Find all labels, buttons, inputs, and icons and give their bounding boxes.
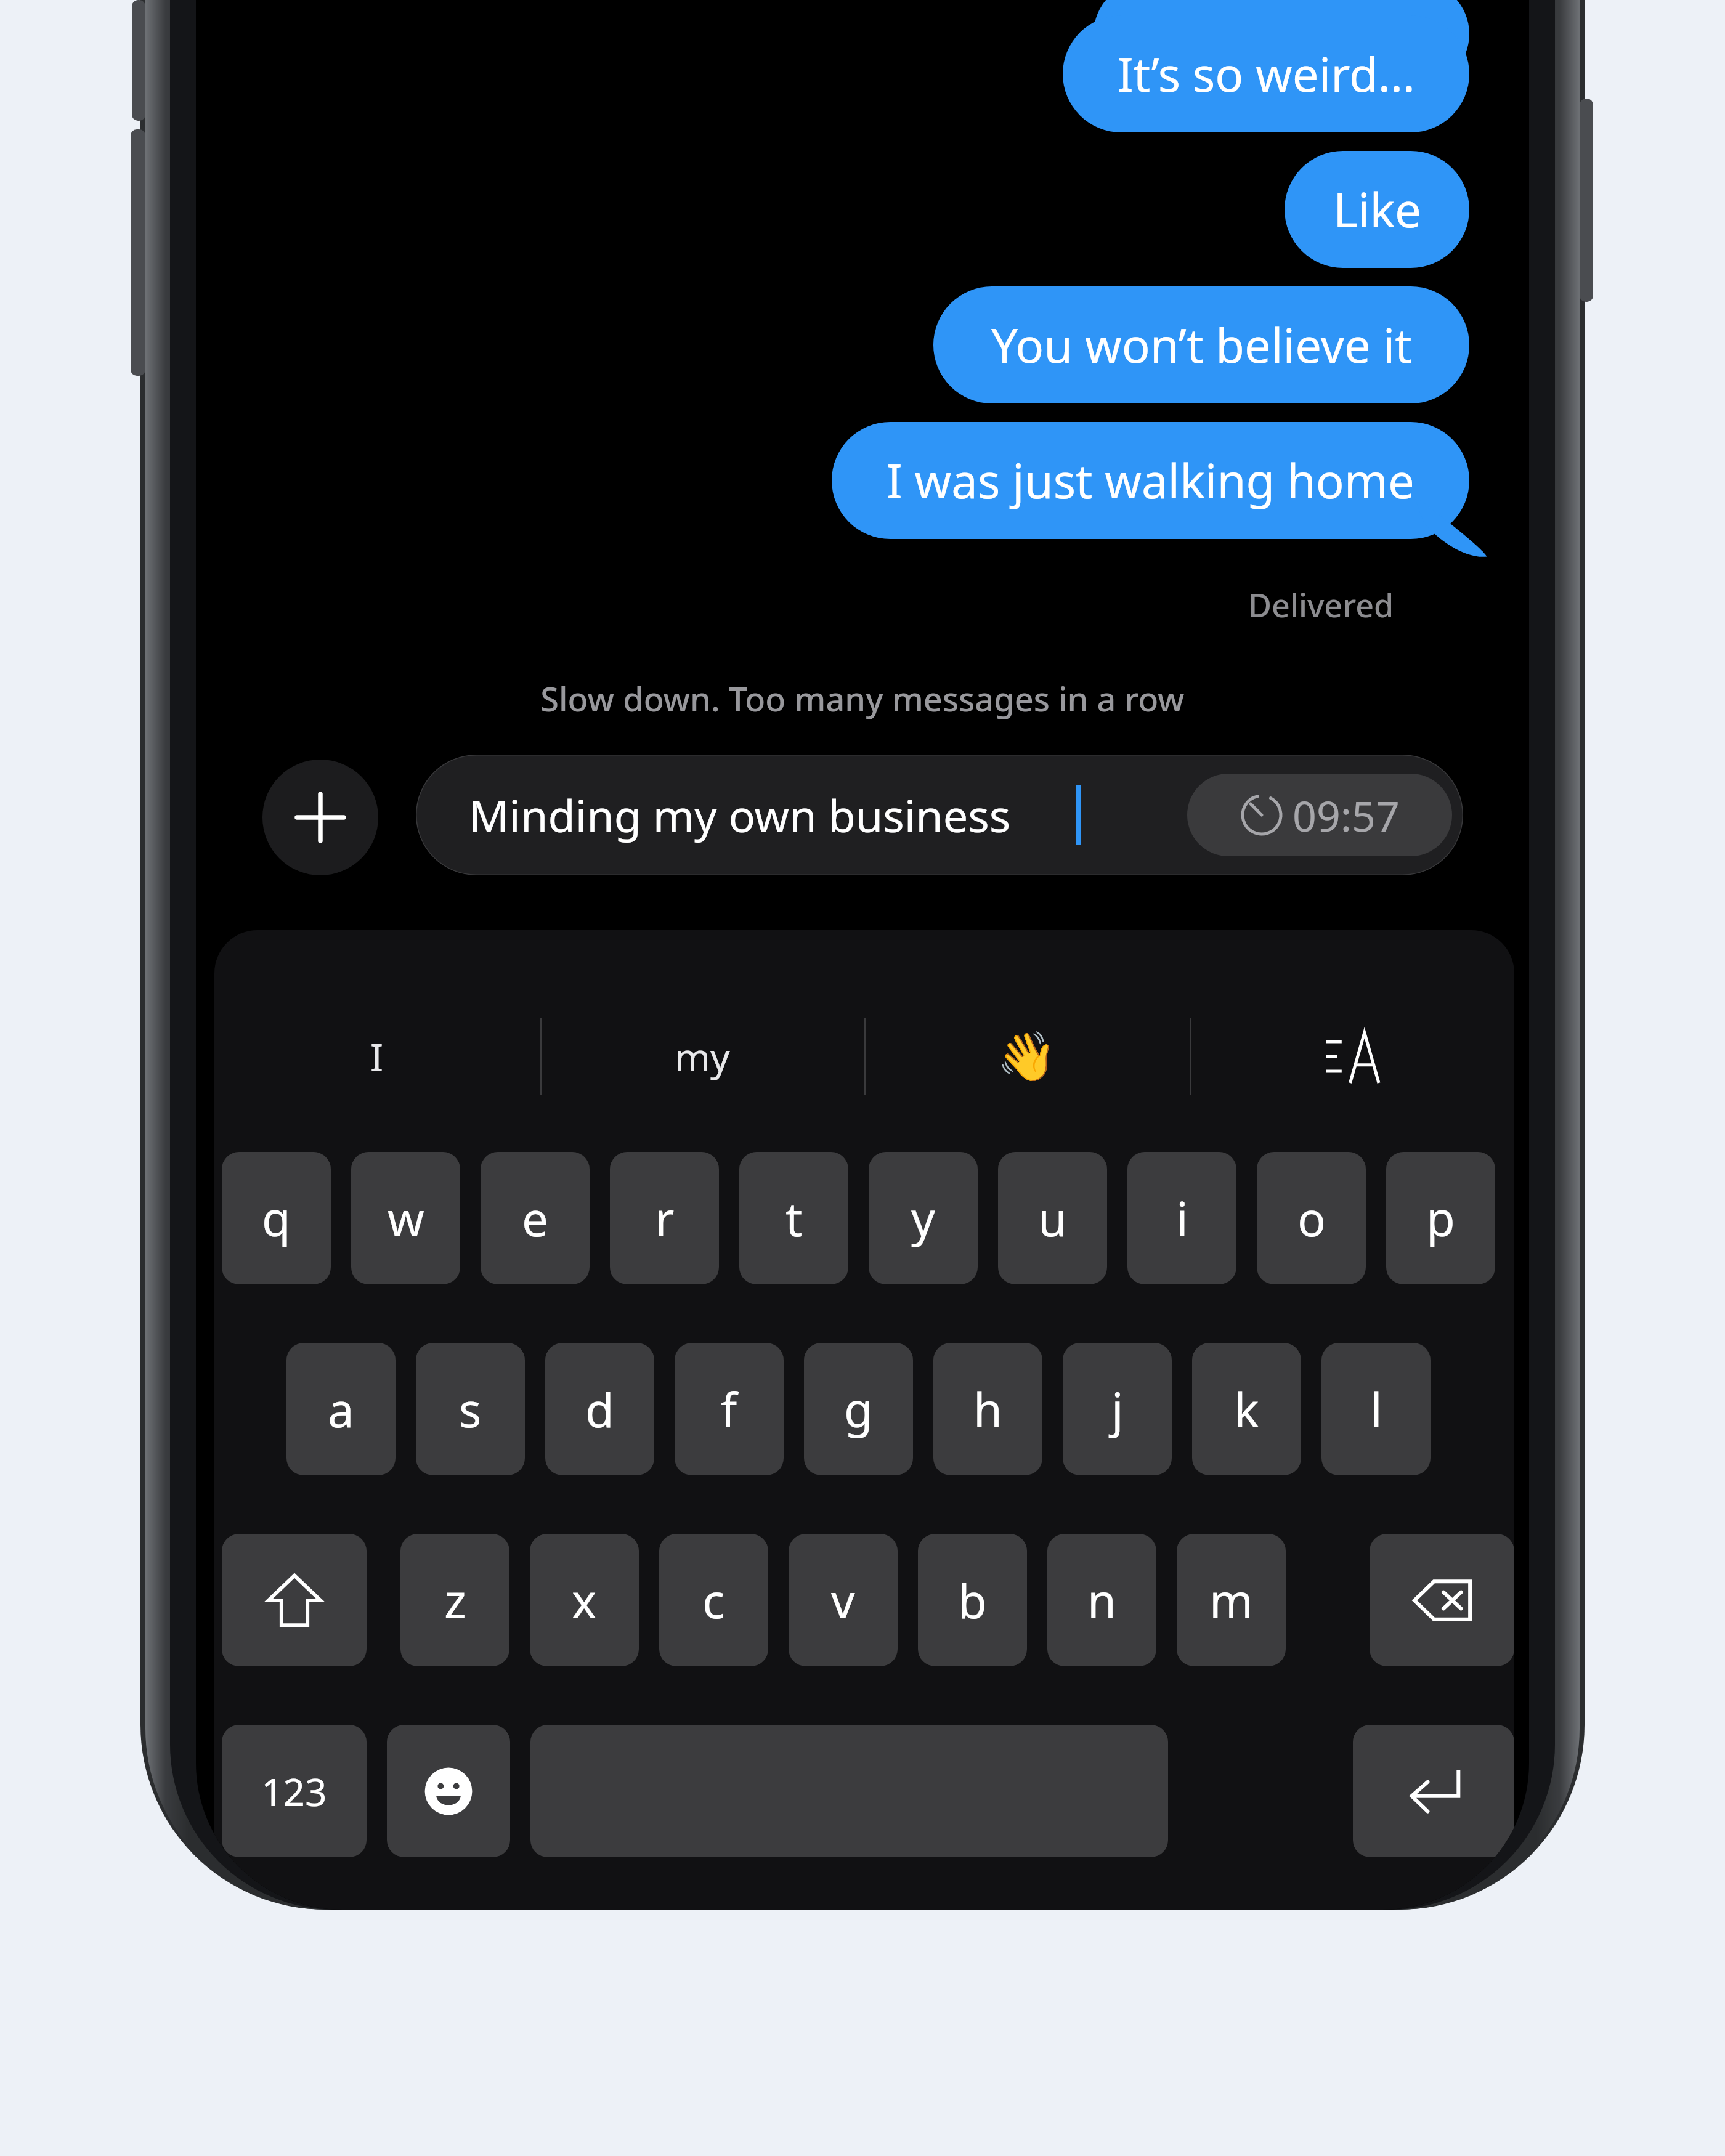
staticText: Like (1333, 177, 1421, 241)
button[interactable]: v (789, 1534, 898, 1666)
staticText: q (262, 1186, 291, 1250)
staticText: k (1234, 1377, 1259, 1441)
staticText: b (958, 1568, 987, 1632)
button[interactable] (1094, 0, 1469, 86)
staticText: n (1087, 1568, 1116, 1632)
button[interactable]: It’s so weird… (1063, 15, 1469, 132)
staticText: w (388, 1186, 424, 1250)
button[interactable]: g (804, 1343, 913, 1475)
button[interactable]: f (675, 1343, 784, 1475)
staticText: Delivered (1248, 583, 1394, 626)
button[interactable]: Add attachment (262, 760, 378, 875)
button[interactable]: l (1321, 1343, 1431, 1475)
button[interactable]: d (545, 1343, 654, 1475)
button[interactable]: z (400, 1534, 509, 1666)
staticText: 👋 (997, 1029, 1057, 1085)
button[interactable]: I was just walking home (832, 422, 1469, 539)
button[interactable]: 👋 (864, 992, 1190, 1121)
button[interactable]: Return (1353, 1725, 1514, 1857)
staticText: m (1209, 1568, 1254, 1632)
button[interactable]: Minding my own business (416, 755, 1463, 875)
button[interactable]: I (214, 992, 540, 1121)
staticText: You won’t believe it (991, 313, 1412, 377)
staticText: h (973, 1377, 1002, 1441)
staticText: c (702, 1568, 725, 1632)
staticText: Minding my own business (469, 785, 1011, 845)
staticText: y (911, 1186, 935, 1250)
button[interactable]: Like (1285, 151, 1469, 268)
button[interactable]: n (1047, 1534, 1156, 1666)
button[interactable]: x (530, 1534, 639, 1666)
staticText: i (1176, 1186, 1188, 1250)
button[interactable]: q (222, 1152, 331, 1284)
staticText: Slow down. Too many messages in a row (540, 676, 1185, 721)
button[interactable]: b (918, 1534, 1027, 1666)
button[interactable]: You won’t believe it (933, 286, 1469, 403)
button[interactable]: p (1386, 1152, 1495, 1284)
staticText: t (785, 1186, 803, 1250)
button[interactable]: 123 (222, 1725, 367, 1857)
staticText: d (585, 1377, 614, 1441)
staticText: p (1426, 1186, 1455, 1250)
button[interactable]: i (1127, 1152, 1236, 1284)
staticText: s (459, 1377, 482, 1441)
button[interactable]: h (933, 1343, 1042, 1475)
button[interactable]: e (481, 1152, 590, 1284)
staticText: f (721, 1377, 737, 1441)
button[interactable]: m (1177, 1534, 1286, 1666)
button[interactable]: k (1192, 1343, 1301, 1475)
staticText: my (675, 1031, 730, 1082)
staticText: 123 (261, 1765, 327, 1817)
button[interactable]: o (1257, 1152, 1366, 1284)
staticText: l (1370, 1377, 1382, 1441)
staticText: j (1111, 1377, 1124, 1441)
button[interactable]: u (998, 1152, 1107, 1284)
staticText: r (655, 1186, 675, 1250)
button[interactable]: c (659, 1534, 768, 1666)
staticText: It’s so weird… (1118, 42, 1415, 106)
button[interactable]: s (416, 1343, 525, 1475)
button[interactable]: j (1063, 1343, 1172, 1475)
button[interactable] (1190, 992, 1515, 1121)
button[interactable]: my (540, 992, 865, 1121)
button[interactable]: y (869, 1152, 978, 1284)
button[interactable]: Emoji (387, 1725, 510, 1857)
button[interactable]: 09:57 (1187, 774, 1452, 856)
button[interactable]: Shift (222, 1534, 367, 1666)
staticText: a (328, 1377, 354, 1441)
button[interactable]: w (351, 1152, 460, 1284)
staticText: u (1038, 1186, 1067, 1250)
staticText: 09:57 (1293, 787, 1400, 844)
staticText: x (572, 1568, 597, 1632)
staticText: I (370, 1031, 384, 1082)
staticText: g (844, 1377, 873, 1441)
button[interactable]: t (739, 1152, 848, 1284)
button[interactable]: a (286, 1343, 396, 1475)
button[interactable]: r (610, 1152, 719, 1284)
staticText: e (522, 1186, 548, 1250)
button[interactable]: Backspace (1370, 1534, 1514, 1666)
staticText: v (831, 1568, 855, 1632)
staticText: I was just walking home (887, 448, 1414, 513)
staticText: o (1297, 1186, 1326, 1250)
staticText: z (444, 1568, 466, 1632)
